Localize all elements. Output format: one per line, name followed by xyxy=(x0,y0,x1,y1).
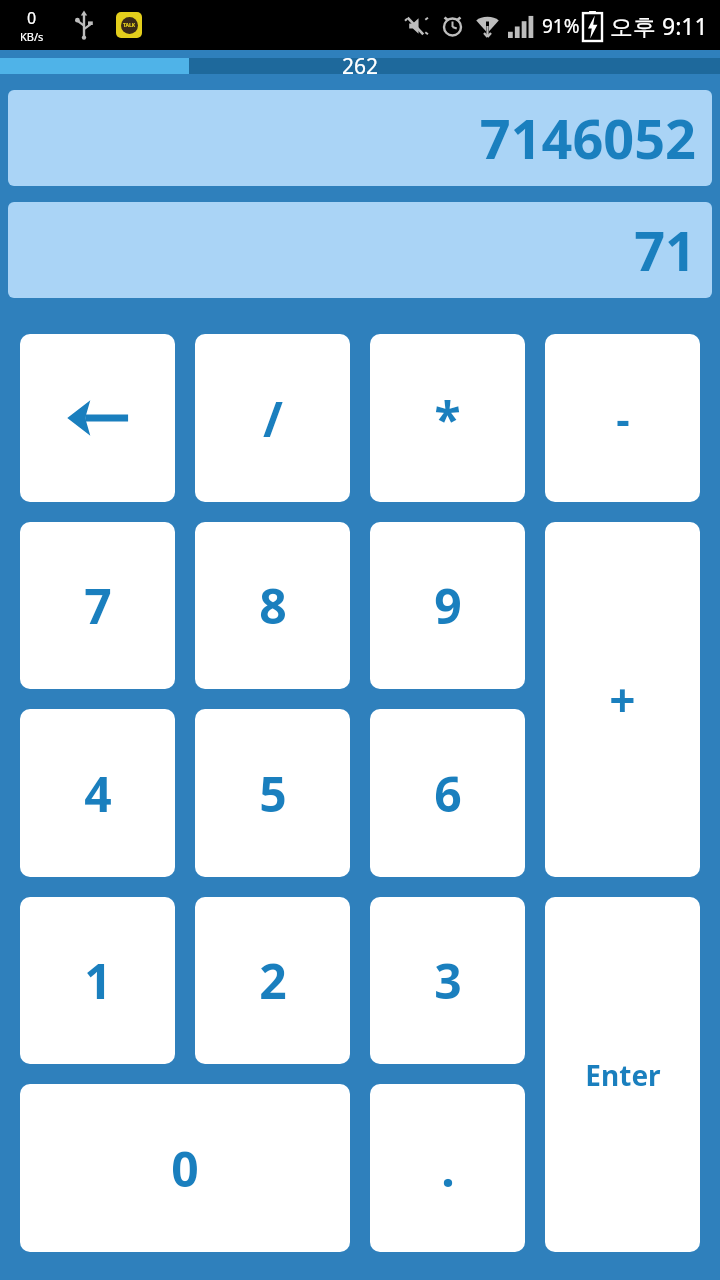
staticText: 91% xyxy=(542,13,580,39)
staticText: 7146052 xyxy=(479,101,696,175)
staticText: - xyxy=(616,390,630,447)
staticText: . xyxy=(441,1136,455,1201)
button[interactable]: 7146052 xyxy=(8,90,712,186)
button[interactable]: . xyxy=(370,1084,525,1252)
staticText: / xyxy=(263,386,283,451)
button[interactable]: 1 xyxy=(20,897,175,1064)
button[interactable]: 9 xyxy=(370,522,525,689)
staticText: 71 xyxy=(634,213,696,287)
staticText: 3 xyxy=(434,948,462,1013)
staticText: + xyxy=(609,668,636,731)
staticText: TALK xyxy=(123,22,136,29)
button[interactable]: * xyxy=(370,334,525,502)
button[interactable]: 6 xyxy=(370,709,525,877)
staticText: 오후 9:11 xyxy=(610,10,708,41)
button[interactable]: 2 xyxy=(195,897,350,1064)
staticText: 5 xyxy=(259,761,287,826)
button[interactable]: 3 xyxy=(370,897,525,1064)
button[interactable]: 4 xyxy=(20,709,175,877)
staticText: 0 xyxy=(171,1136,199,1201)
button[interactable]: 5 xyxy=(195,709,350,877)
button[interactable]: 71 xyxy=(8,202,712,298)
staticText: 6 xyxy=(434,761,462,826)
staticText: 2 xyxy=(259,948,287,1013)
staticText: Enter xyxy=(585,1056,661,1094)
button[interactable]: + xyxy=(545,522,700,877)
button[interactable]: 7 xyxy=(20,522,175,689)
staticText: 1 xyxy=(84,948,112,1013)
button[interactable]: 8 xyxy=(195,522,350,689)
button[interactable]: Backspace xyxy=(20,334,175,502)
staticText: 0 xyxy=(27,7,37,29)
staticText: * xyxy=(434,386,461,451)
button[interactable]: Enter xyxy=(545,897,700,1252)
staticText: 7 xyxy=(84,573,112,638)
staticText: KB/s xyxy=(20,29,44,44)
button[interactable]: - xyxy=(545,334,700,502)
button[interactable]: / xyxy=(195,334,350,502)
staticText: 4 xyxy=(84,761,112,826)
staticText: 9 xyxy=(434,573,462,638)
staticText: 8 xyxy=(259,573,287,638)
button[interactable]: 0 xyxy=(20,1084,350,1252)
staticText: 262 xyxy=(342,52,379,81)
